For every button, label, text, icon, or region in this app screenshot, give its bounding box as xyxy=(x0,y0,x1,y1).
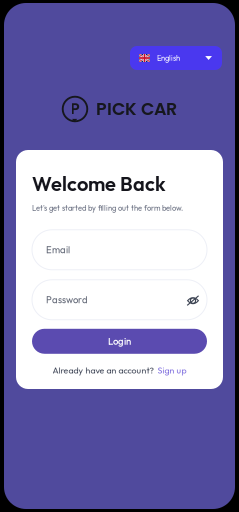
staticText: Let's get started by filling out the for… xyxy=(32,203,183,213)
staticText: PICK CAR xyxy=(96,97,177,121)
button[interactable]: Login xyxy=(32,329,207,354)
staticText: English xyxy=(157,53,180,63)
button[interactable]: English xyxy=(130,46,222,70)
staticText: Sign up xyxy=(157,365,186,376)
button[interactable]: Sign up xyxy=(153,365,186,376)
staticText: Welcome Back xyxy=(32,171,166,196)
staticText: Login xyxy=(108,335,131,347)
staticText: Email xyxy=(46,244,70,256)
staticText: P xyxy=(70,98,79,119)
staticText: Password xyxy=(46,294,88,306)
staticText: Already have an account? xyxy=(52,365,153,376)
